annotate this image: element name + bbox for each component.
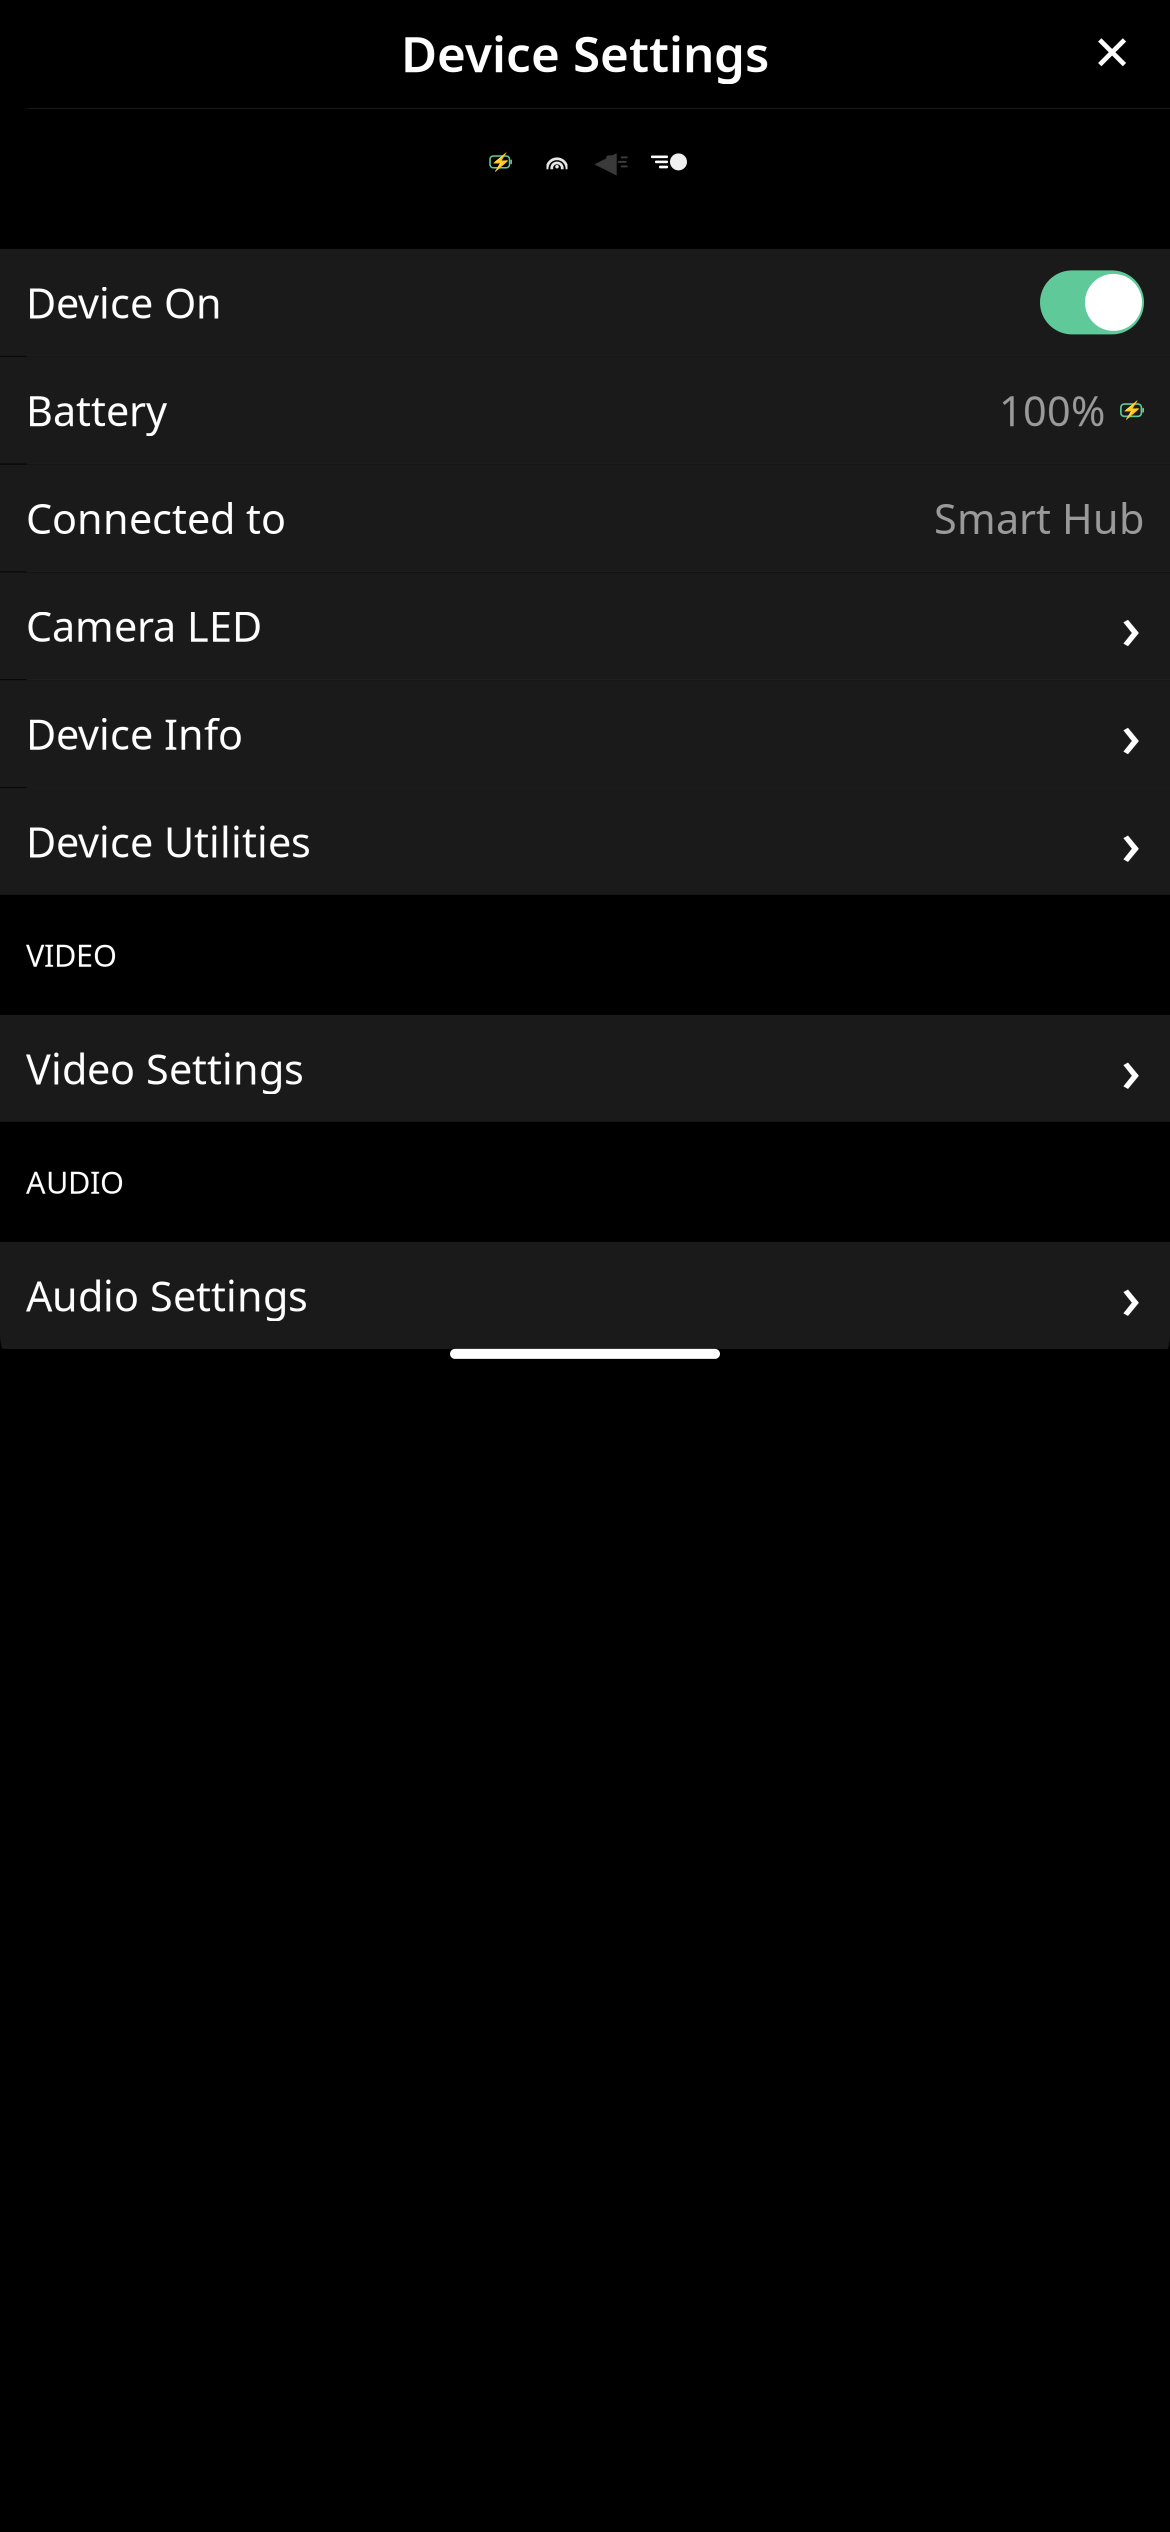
button[interactable]: Device On xyxy=(0,249,1170,356)
staticText: Device Info xyxy=(26,706,243,761)
staticText: › xyxy=(1121,1255,1141,1336)
staticText: VIDEO xyxy=(26,934,117,975)
button[interactable]: Audio Settings xyxy=(0,1242,1170,1349)
button[interactable]: Close xyxy=(1076,17,1148,89)
staticText: › xyxy=(1121,1028,1141,1109)
staticText: Camera LED xyxy=(26,598,262,653)
staticText: › xyxy=(1121,801,1141,882)
staticText: ✕ xyxy=(1092,26,1132,80)
staticText: 100% xyxy=(999,383,1105,438)
staticText: Device Utilities xyxy=(26,814,311,869)
staticText: › xyxy=(1121,585,1141,666)
staticText: Audio Settings xyxy=(26,1268,308,1323)
staticText: ⚡ xyxy=(1121,400,1143,420)
staticText: › xyxy=(1121,693,1141,774)
staticText: Device Settings xyxy=(401,20,769,86)
button[interactable]: Camera LED xyxy=(0,572,1170,679)
staticText: Connected to xyxy=(26,491,286,545)
staticText: Video Settings xyxy=(26,1041,304,1096)
staticText: Device On xyxy=(26,275,222,330)
button[interactable]: Device Utilities xyxy=(0,788,1170,895)
staticText: ⚡ xyxy=(490,152,512,172)
button[interactable]: Video Settings xyxy=(0,1015,1170,1122)
button[interactable]: Device Info xyxy=(0,680,1170,787)
staticText: Smart Hub xyxy=(934,491,1144,545)
staticText: ◀ xyxy=(594,145,617,179)
staticText: AUDIO xyxy=(26,1161,124,1202)
staticText: Battery xyxy=(26,383,167,438)
